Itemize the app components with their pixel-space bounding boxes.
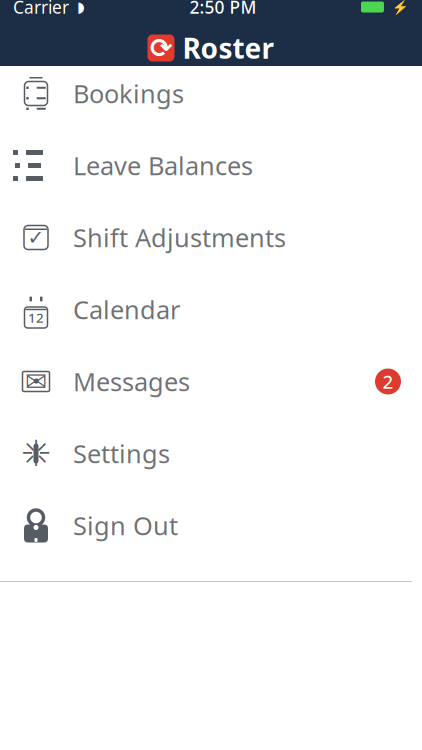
staticText: ✉ <box>25 366 47 397</box>
button[interactable]: Bookings <box>0 74 422 138</box>
staticText: Roster <box>182 29 274 67</box>
staticText: ◗ <box>77 0 85 15</box>
button[interactable]: Leave Balances <box>0 146 422 210</box>
staticText: Sign Out <box>73 509 178 542</box>
staticText: Messages <box>73 365 190 398</box>
staticText: 2 <box>382 369 393 394</box>
staticText: 2:50 PM <box>189 0 256 18</box>
staticText: ✓ <box>27 226 44 249</box>
staticText: Settings <box>73 437 170 470</box>
button[interactable]: Sign Out <box>0 506 422 570</box>
staticText: ⟳ <box>150 33 172 63</box>
staticText: Carrier <box>13 0 69 18</box>
staticText: Bookings <box>73 77 184 110</box>
staticText: ⚡ <box>392 0 409 15</box>
staticText: Leave Balances <box>73 149 253 182</box>
staticText: ✳ <box>21 433 51 474</box>
staticText: 12 <box>28 309 44 326</box>
button[interactable]: 12 <box>0 290 422 354</box>
staticText: Calendar <box>73 293 180 326</box>
button[interactable]: ✉ <box>0 362 422 426</box>
staticText: Shift Adjustments <box>73 221 286 254</box>
button[interactable]: ✳ <box>0 434 422 498</box>
button[interactable]: ✓ <box>0 218 422 282</box>
